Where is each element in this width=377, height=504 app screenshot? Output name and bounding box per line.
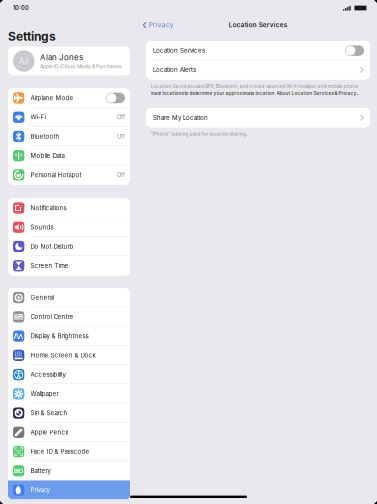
button[interactable]: Apple Pencil — [8, 423, 130, 442]
staticText: Home Screen & Dock — [30, 352, 95, 359]
button[interactable]: Display & Brightness — [8, 326, 130, 346]
button[interactable]: Notifications — [8, 198, 130, 218]
staticText: Airplane Mode — [30, 94, 73, 102]
staticText: Bluetooth — [30, 133, 59, 140]
staticText: Sounds — [30, 223, 53, 231]
button[interactable]: Control Centre — [8, 307, 130, 326]
staticText: 10:00 — [13, 5, 29, 11]
button[interactable]: Privacy — [139, 16, 182, 34]
button[interactable]: AJ — [8, 46, 130, 75]
button[interactable]: Do Not Disturb — [8, 237, 130, 256]
staticText: Location Services uses GPS, Bluetooth, a… — [151, 83, 359, 89]
staticText: Off — [117, 114, 125, 121]
staticText: Display & Brightness — [30, 332, 88, 340]
button[interactable]: Bluetooth — [8, 127, 130, 146]
staticText: Location Services — [153, 47, 205, 54]
button[interactable]: Screen Time — [8, 256, 130, 275]
staticText: AJ — [19, 57, 28, 65]
staticText: Screen Time — [30, 262, 68, 269]
staticText: Wallpaper — [30, 390, 58, 397]
staticText: Alan Jones — [40, 52, 83, 62]
staticText: Notifications — [30, 204, 66, 212]
staticText: General — [30, 294, 53, 301]
staticText: Apple Pencil — [30, 429, 67, 436]
button[interactable]: Personal Hotspot — [8, 165, 130, 184]
button[interactable]: Home Screen & Dock — [8, 346, 130, 365]
staticText: Location Alerts — [153, 66, 196, 74]
button[interactable]: Privacy — [8, 480, 130, 500]
button[interactable]: Location Alerts — [146, 60, 370, 79]
staticText: Mobile Data — [30, 152, 64, 159]
button[interactable]: Sounds — [8, 218, 130, 237]
button[interactable]: Wi-Fi — [8, 108, 130, 127]
button[interactable]: Airplane Mode — [8, 88, 130, 107]
staticText: Off — [117, 171, 125, 178]
staticText: "iPhone" is being used for location shar… — [151, 131, 248, 137]
staticText: Location Services — [229, 21, 287, 29]
staticText: mast locations to determine your approxi… — [151, 90, 359, 96]
staticText: Battery — [30, 467, 50, 474]
button[interactable]: Battery — [8, 461, 130, 480]
button[interactable]: Accessibility — [8, 365, 130, 384]
button[interactable]: Mobile Data — [8, 146, 130, 165]
button[interactable]: Wallpaper — [8, 384, 130, 403]
staticText: Privacy — [30, 486, 49, 494]
staticText: Siri & Search — [30, 409, 67, 417]
staticText: Share My Location — [153, 114, 208, 121]
button[interactable]: General — [8, 288, 130, 307]
button[interactable]: Location Services — [146, 41, 370, 60]
staticText: Apple ID, iCloud, Media & Purchases — [40, 64, 122, 69]
staticText: Wi-Fi — [30, 113, 45, 121]
staticText: Settings — [8, 29, 56, 43]
staticText: Personal Hotspot — [30, 171, 81, 179]
staticText: Face ID & Passcode — [30, 448, 89, 455]
staticText: Do Not Disturb — [30, 243, 73, 250]
button[interactable]: Face ID & Passcode — [8, 442, 130, 461]
button[interactable]: Siri & Search — [8, 403, 130, 423]
button[interactable]: Share My Location — [146, 108, 370, 127]
staticText: Privacy — [149, 21, 174, 29]
staticText: Accessibility — [30, 371, 65, 378]
staticText: Off — [117, 133, 125, 140]
staticText: Control Centre — [30, 313, 73, 320]
